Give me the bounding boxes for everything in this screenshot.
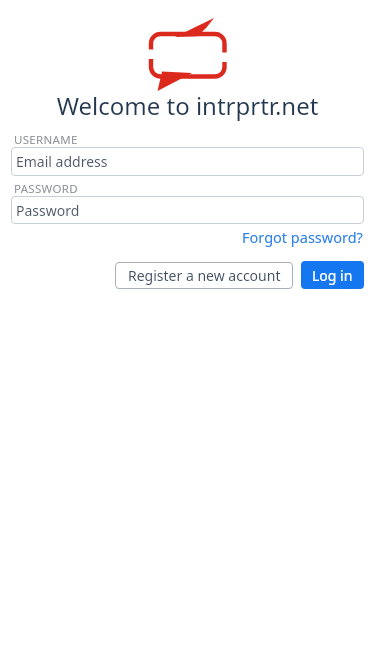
staticText: USERNAME [14, 132, 78, 148]
button[interactable]: Log in [301, 261, 364, 289]
staticText: Register a new account [128, 266, 281, 285]
staticText: Welcome to intrprtr.net [0, 89, 375, 122]
button[interactable]: Password [11, 196, 364, 224]
staticText: Password [16, 201, 80, 220]
button[interactable]: Register a new account [115, 262, 293, 289]
staticText: PASSWORD [14, 181, 78, 197]
staticText: Email address [16, 152, 108, 171]
button[interactable]: Email address [11, 147, 364, 176]
staticText: Log in [312, 266, 353, 285]
button[interactable]: Forgot password? [242, 227, 363, 247]
